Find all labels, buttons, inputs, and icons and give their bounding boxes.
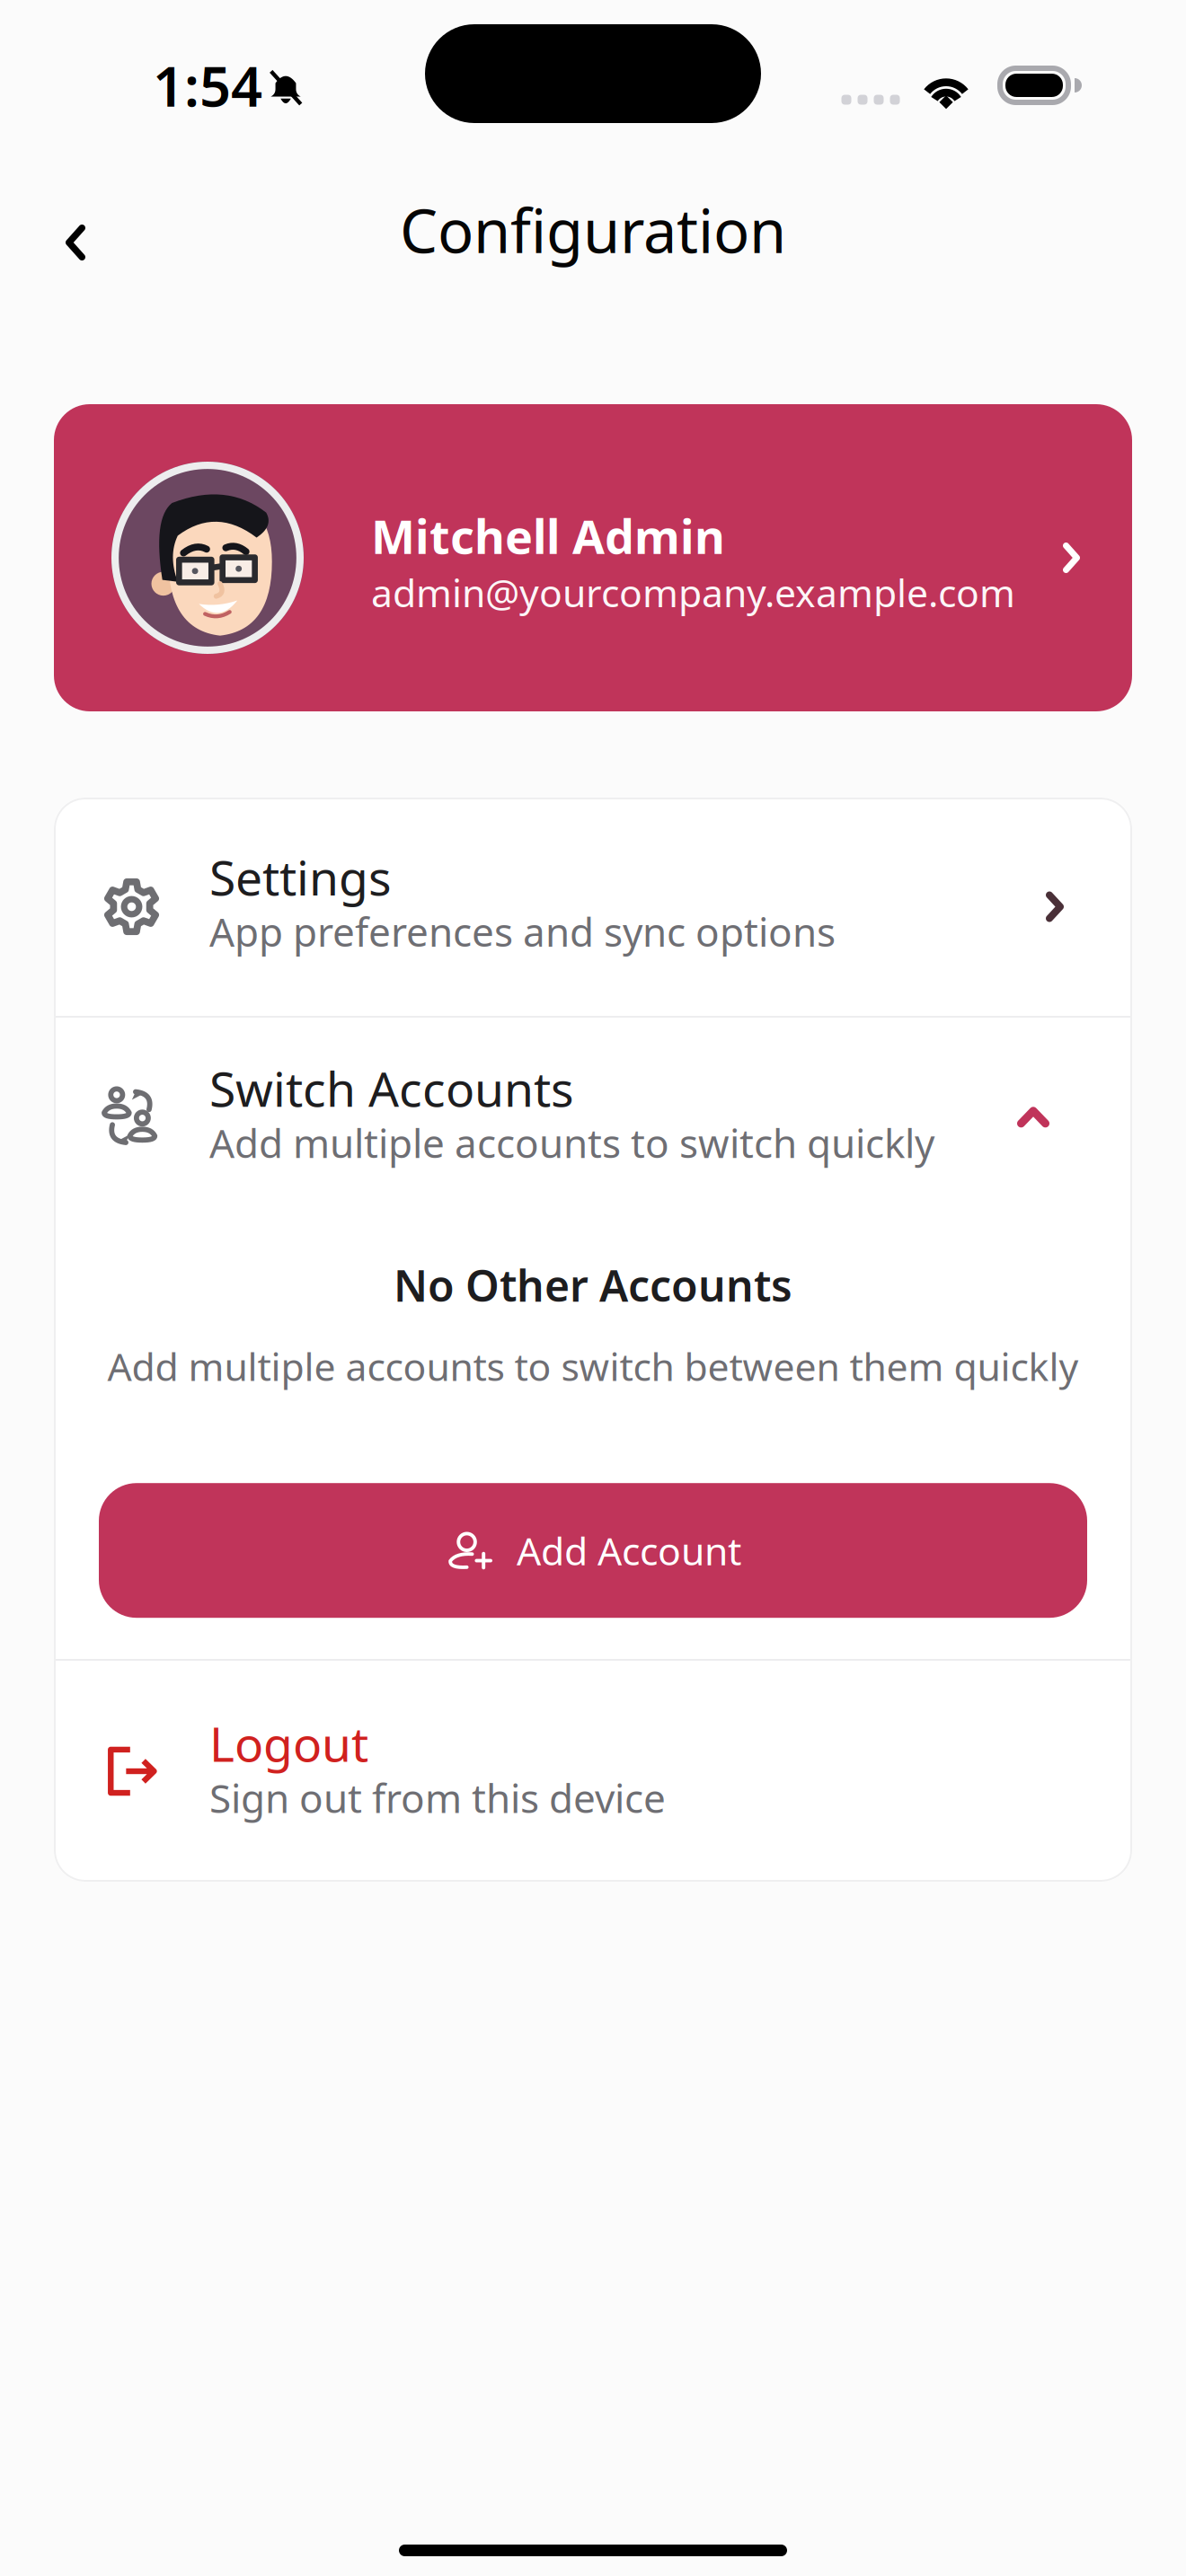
staticText: Mitchell Admin (371, 505, 725, 567)
staticText: Sign out from this device (209, 1771, 666, 1824)
button[interactable]: Logout (54, 1661, 1132, 1882)
staticText: Add multiple accounts to switch between … (107, 1341, 1079, 1391)
staticText: Switch Accounts (209, 1056, 574, 1120)
staticText: Add multiple accounts to switch quickly (209, 1116, 934, 1169)
button[interactable]: Switch Accounts (54, 1016, 1132, 1219)
staticText: Logout (209, 1711, 368, 1775)
staticText: App preferences and sync options (209, 905, 836, 958)
button[interactable]: Mitchell Admin (54, 404, 1132, 711)
button[interactable]: Settings (54, 798, 1132, 1016)
button[interactable]: Back (32, 199, 119, 286)
staticText: 1:54 (153, 49, 262, 122)
staticText: admin@yourcompany.example.com (371, 567, 1015, 618)
staticText: No Other Accounts (394, 1256, 792, 1314)
staticText: Configuration (400, 190, 786, 270)
button[interactable]: Add Account (99, 1483, 1087, 1618)
staticText: Add Account (517, 1525, 741, 1576)
staticText: Settings (209, 845, 392, 909)
